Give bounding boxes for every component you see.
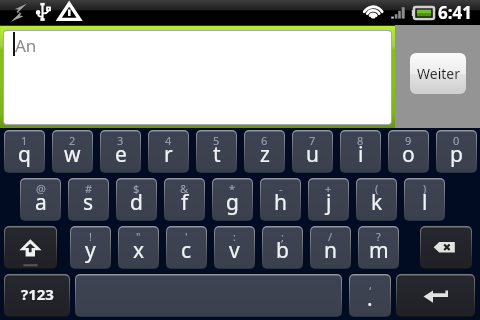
button[interactable]: 9 bbox=[388, 130, 429, 173]
button[interactable]: $ bbox=[116, 178, 157, 221]
staticText: . bbox=[367, 284, 373, 313]
staticText: 3 bbox=[117, 133, 124, 148]
staticText: 0 bbox=[453, 133, 460, 148]
button[interactable]: + bbox=[308, 178, 349, 221]
staticText: $ bbox=[133, 181, 140, 196]
button[interactable]: ! bbox=[70, 226, 111, 269]
button[interactable]: ; bbox=[262, 226, 303, 269]
staticText: c bbox=[181, 236, 192, 265]
staticText: k bbox=[371, 188, 383, 217]
button[interactable] bbox=[4, 31, 391, 124]
staticText: : bbox=[233, 229, 236, 244]
staticText: 8 bbox=[357, 133, 364, 148]
button[interactable]: 8 bbox=[340, 130, 381, 173]
staticText: ? bbox=[376, 229, 381, 244]
staticText: l bbox=[422, 188, 428, 217]
staticText: q bbox=[18, 140, 31, 169]
staticText: w bbox=[64, 140, 81, 169]
button[interactable]: Shift bbox=[4, 226, 57, 269]
button[interactable]: ) bbox=[404, 178, 445, 221]
button[interactable]: Enter bbox=[396, 274, 475, 317]
staticText: e bbox=[115, 140, 127, 169]
button[interactable]: & bbox=[164, 178, 205, 221]
button[interactable]: 3 bbox=[100, 130, 141, 173]
staticText: + bbox=[325, 181, 332, 196]
button[interactable]: 0 bbox=[436, 130, 477, 173]
staticText: - bbox=[279, 181, 283, 196]
staticText: z bbox=[260, 140, 270, 169]
staticText: a bbox=[35, 188, 47, 217]
staticText: p bbox=[450, 140, 463, 169]
button[interactable]: 5 bbox=[196, 130, 237, 173]
staticText: ?123 bbox=[21, 284, 54, 304]
staticText: ( bbox=[375, 181, 379, 196]
button[interactable]: ? bbox=[358, 226, 399, 269]
button[interactable]: ?123 bbox=[4, 274, 70, 317]
staticText: v bbox=[229, 236, 240, 265]
staticText: @ bbox=[36, 181, 46, 196]
staticText: m bbox=[369, 236, 389, 265]
staticText: j bbox=[326, 188, 332, 217]
button[interactable]: @ bbox=[20, 178, 61, 221]
staticText: * bbox=[229, 181, 236, 196]
staticText: 2 bbox=[69, 133, 76, 148]
staticText: u bbox=[306, 140, 319, 169]
button[interactable]: Backspace bbox=[420, 226, 472, 269]
staticText: y bbox=[85, 236, 96, 265]
staticText: An bbox=[15, 34, 37, 57]
staticText: 6 bbox=[261, 133, 268, 148]
staticText: 4 bbox=[165, 133, 172, 148]
staticText: ; bbox=[281, 229, 284, 244]
staticText: 5 bbox=[213, 133, 220, 148]
button[interactable]: # bbox=[68, 178, 109, 221]
staticText: 6:41 bbox=[438, 1, 472, 24]
staticText: ! bbox=[89, 229, 92, 244]
staticText: 7 bbox=[309, 133, 316, 148]
staticText: b bbox=[276, 236, 289, 265]
staticText: h bbox=[274, 188, 287, 217]
staticText: n bbox=[324, 236, 337, 265]
staticText: ) bbox=[423, 181, 427, 196]
button[interactable]: , bbox=[349, 274, 391, 317]
button[interactable]: ( bbox=[356, 178, 397, 221]
staticText: 9 bbox=[405, 133, 412, 148]
staticText: g bbox=[226, 188, 239, 217]
button[interactable]: 1 bbox=[4, 130, 45, 173]
staticText: , bbox=[369, 277, 372, 292]
staticText: s bbox=[83, 188, 94, 217]
button[interactable]: 2 bbox=[52, 130, 93, 173]
staticText: Weiter bbox=[417, 64, 460, 83]
button[interactable]: * bbox=[212, 178, 253, 221]
button[interactable]: 7 bbox=[292, 130, 333, 173]
button[interactable]: Weiter bbox=[410, 53, 466, 94]
button[interactable]: " bbox=[118, 226, 159, 269]
button[interactable]: 4 bbox=[148, 130, 189, 173]
staticText: i bbox=[358, 140, 364, 169]
staticText: / bbox=[328, 229, 333, 244]
staticText: x bbox=[133, 236, 145, 265]
button[interactable]: 6 bbox=[244, 130, 285, 173]
staticText: t bbox=[213, 140, 221, 169]
button[interactable]: / bbox=[310, 226, 351, 269]
staticText: 1 bbox=[21, 133, 28, 148]
staticText: r bbox=[164, 140, 173, 169]
staticText: " bbox=[136, 229, 141, 244]
staticText: ' bbox=[185, 229, 188, 244]
staticText: f bbox=[181, 188, 189, 217]
button[interactable]: Space bbox=[75, 274, 342, 317]
button[interactable]: - bbox=[260, 178, 301, 221]
staticText: d bbox=[130, 188, 143, 217]
staticText: # bbox=[85, 181, 93, 196]
button[interactable]: : bbox=[214, 226, 255, 269]
button[interactable]: ' bbox=[166, 226, 207, 269]
staticText: o bbox=[402, 140, 415, 169]
staticText: & bbox=[180, 181, 189, 196]
